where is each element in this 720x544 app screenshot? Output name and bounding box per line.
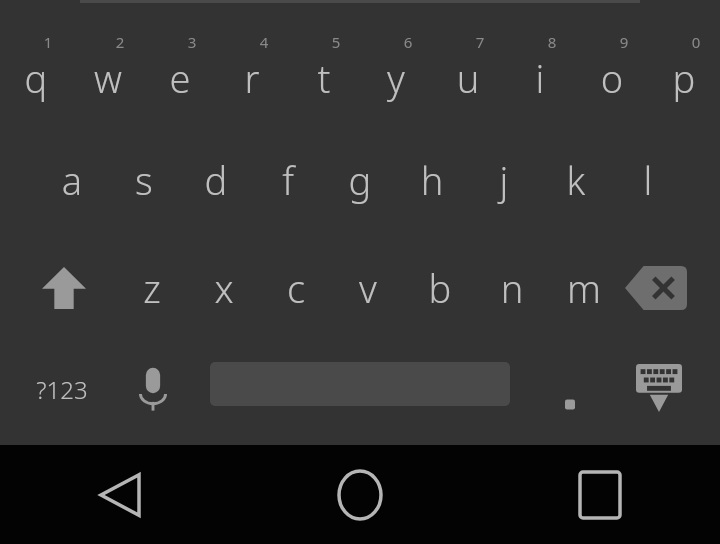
staticText: t [288, 52, 360, 104]
staticText: d [180, 154, 252, 206]
staticText: h [396, 154, 468, 206]
staticText: 2 [102, 32, 138, 52]
staticText: n [476, 262, 548, 314]
staticText: 8 [534, 32, 570, 52]
staticText: e [144, 52, 216, 104]
staticText: b [404, 262, 476, 314]
staticText: w [72, 52, 144, 104]
staticText: 6 [390, 32, 426, 52]
staticText: g [324, 154, 396, 206]
staticText: 3 [174, 32, 210, 52]
button[interactable]: k [540, 140, 612, 220]
button[interactable]: v [332, 248, 404, 328]
staticText: 5 [318, 32, 354, 52]
staticText: u [432, 52, 504, 104]
button[interactable]: 4 [216, 20, 288, 112]
staticText: 7 [462, 32, 498, 52]
staticText: f [252, 154, 324, 206]
button[interactable]: 7 [432, 20, 504, 112]
button[interactable]: Voice input [118, 356, 188, 422]
staticText: l [612, 154, 684, 206]
button[interactable]: s [108, 140, 180, 220]
staticText: 0 [678, 32, 714, 52]
button[interactable]: Recent apps [480, 445, 720, 544]
button[interactable]: Home [240, 445, 480, 544]
staticText: c [260, 262, 332, 314]
button[interactable]: h [396, 140, 468, 220]
button[interactable]: 5 [288, 20, 360, 112]
staticText: x [188, 262, 260, 314]
button[interactable]: z [116, 248, 188, 328]
staticText: v [332, 262, 404, 314]
button[interactable]: Shift [20, 248, 108, 328]
button[interactable]: 0 [648, 20, 720, 112]
button[interactable]: d [180, 140, 252, 220]
button[interactable]: 6 [360, 20, 432, 112]
staticText: ?123 [36, 373, 88, 406]
button[interactable]: g [324, 140, 396, 220]
button[interactable]: Back [0, 445, 240, 544]
staticText: 9 [606, 32, 642, 52]
staticText: j [468, 154, 540, 206]
button[interactable]: l [612, 140, 684, 220]
staticText: r [216, 52, 288, 104]
button[interactable]: 8 [504, 20, 576, 112]
button[interactable]: m [548, 248, 620, 328]
button[interactable]: x [188, 248, 260, 328]
staticText: a [36, 154, 108, 206]
button[interactable]: 1 [0, 20, 72, 112]
staticText: i [504, 52, 576, 104]
staticText: 1 [30, 32, 66, 52]
staticText: o [576, 52, 648, 104]
staticText: s [108, 154, 180, 206]
button[interactable]: a [36, 140, 108, 220]
button[interactable]: 3 [144, 20, 216, 112]
button[interactable]: 2 [72, 20, 144, 112]
staticText: p [648, 52, 720, 104]
button[interactable]: b [404, 248, 476, 328]
staticText: y [360, 52, 432, 104]
staticText: q [0, 52, 72, 104]
staticText: z [116, 262, 188, 314]
button[interactable]: n [476, 248, 548, 328]
button[interactable]: c [260, 248, 332, 328]
button[interactable]: Backspace [612, 248, 700, 328]
staticText: 4 [246, 32, 282, 52]
staticText: m [548, 262, 620, 314]
button[interactable] [536, 356, 604, 422]
button[interactable]: j [468, 140, 540, 220]
button[interactable]: f [252, 140, 324, 220]
button[interactable]: Hide keyboard [618, 352, 700, 424]
button[interactable]: ?123 [14, 356, 110, 422]
staticText: k [540, 154, 612, 206]
button[interactable]: 9 [576, 20, 648, 112]
